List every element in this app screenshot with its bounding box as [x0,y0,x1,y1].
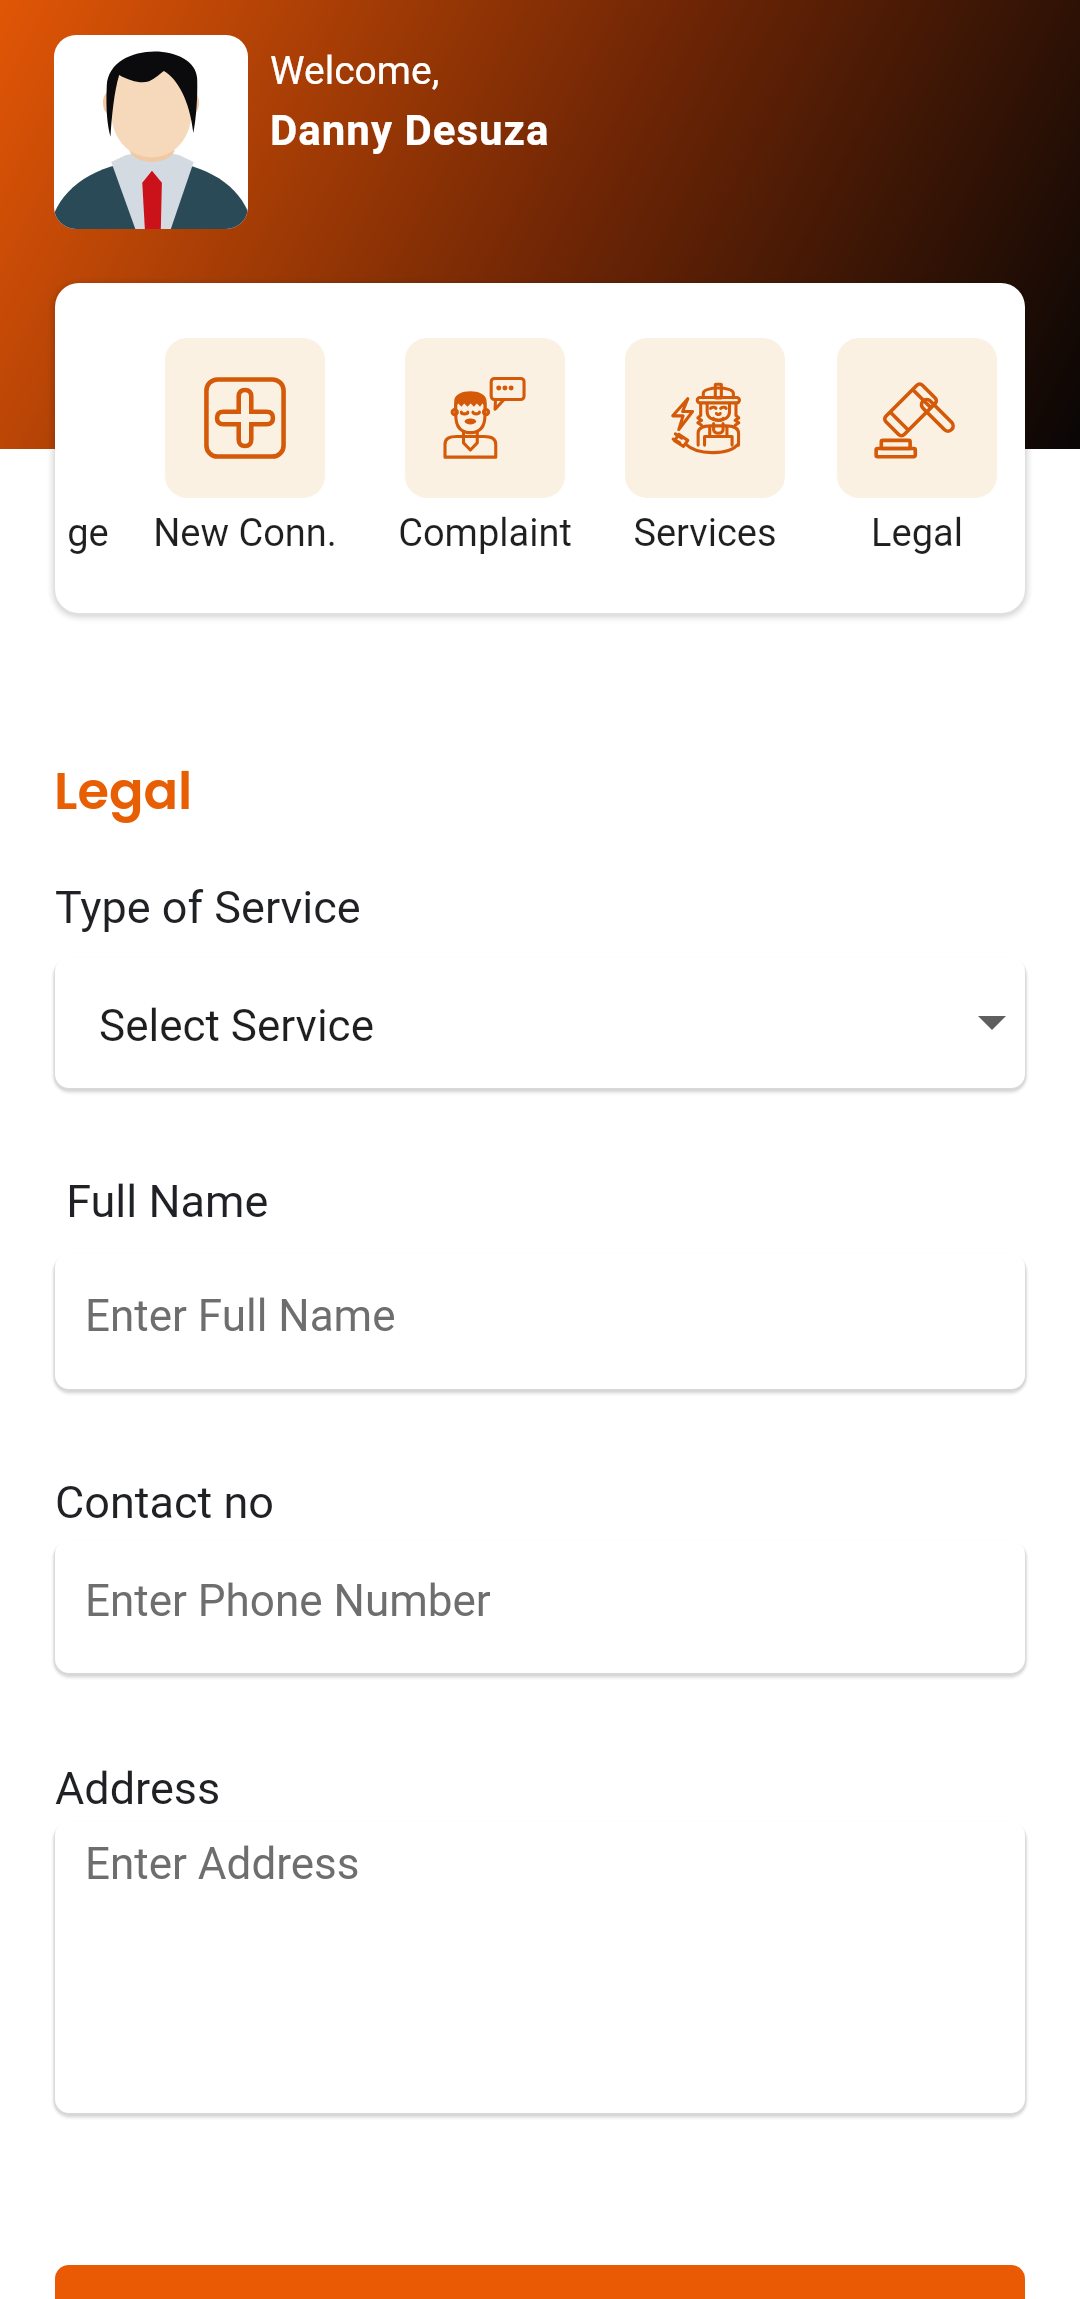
button[interactable]: Enter Phone Number [55,1540,1025,1673]
other: Open service list [978,1016,1006,1030]
button[interactable]: Complaint [368,283,601,613]
button[interactable]: Enter Address [55,1822,1025,2113]
staticText: Full Name [55,1175,269,1228]
staticText: Services [633,511,777,556]
other: Services [625,338,785,498]
button[interactable]: Legal [809,283,1025,613]
staticText: Type of Service [55,881,361,934]
staticText: New Conn. [153,511,337,556]
staticText: Contact no [55,1476,274,1529]
other: New Connection [165,338,325,498]
staticText: Danny Desuza [270,106,550,155]
button[interactable]: Profile photo [54,35,248,229]
button[interactable]: New Connection [121,283,368,613]
staticText: ge [67,511,109,556]
button[interactable]: Enter Full Name [55,1254,1025,1389]
staticText: Enter Phone Number [85,1575,491,1627]
staticText: Legal [871,511,963,556]
staticText: Address [55,1762,221,1815]
staticText: Welcome, [270,48,440,94]
button[interactable]: Services [601,283,809,613]
staticText: Select Service [99,1000,374,1052]
staticText: Complaint [398,511,572,556]
staticText: Legal [54,755,193,826]
button[interactable]: Submit [55,2265,1025,2299]
staticText: Enter Address [85,1838,360,1890]
other: Legal [837,338,997,498]
other: Complaint [405,338,565,498]
button[interactable]: ge [55,283,121,613]
button[interactable]: Select Service [55,958,1025,1088]
staticText: Enter Full Name [85,1290,396,1342]
